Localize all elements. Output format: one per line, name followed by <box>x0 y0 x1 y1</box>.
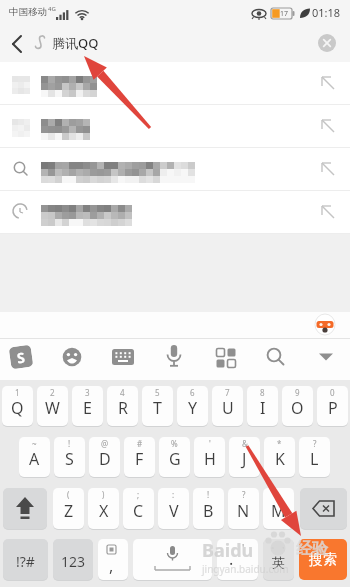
staticText: ! <box>68 438 71 449</box>
button[interactable]: ! <box>193 488 224 529</box>
button[interactable]: 9 <box>282 386 313 426</box>
staticText: I <box>260 397 266 419</box>
button[interactable]: ? <box>228 488 259 529</box>
staticText: … <box>275 489 282 500</box>
staticText: 6 <box>190 387 195 398</box>
button[interactable]: , <box>98 539 128 580</box>
button[interactable]: ' <box>194 437 225 477</box>
button[interactable]: 5 <box>142 386 173 426</box>
staticText: !?# <box>16 552 35 571</box>
staticText: 4 <box>120 387 125 398</box>
staticText: % <box>171 438 178 449</box>
staticText: & <box>242 438 248 449</box>
staticText: : <box>172 489 175 500</box>
staticText: K <box>275 448 285 470</box>
button[interactable] <box>216 348 236 368</box>
staticText: N <box>237 500 250 522</box>
staticText: H <box>204 448 216 470</box>
button[interactable]: 1 <box>2 386 33 426</box>
staticText: T <box>153 397 162 419</box>
button[interactable]: 8 <box>247 386 278 426</box>
button[interactable]: 6 <box>177 386 208 426</box>
staticText: 5 <box>155 387 160 398</box>
button[interactable] <box>318 34 336 52</box>
button[interactable]: 0 <box>317 386 348 426</box>
staticText: W <box>45 397 60 419</box>
staticText: ; <box>137 489 140 500</box>
staticText: C <box>133 500 144 522</box>
button[interactable] <box>0 191 350 234</box>
staticText: 3 <box>85 387 90 398</box>
button[interactable] <box>166 345 182 369</box>
button[interactable] <box>0 148 350 191</box>
button[interactable]: ) <box>88 488 119 529</box>
staticText: A <box>29 448 40 470</box>
button[interactable]: & <box>229 437 260 477</box>
staticText: Y <box>188 397 198 419</box>
button[interactable]: ~ <box>19 437 50 477</box>
staticText: J <box>242 448 247 470</box>
button[interactable]: … <box>263 488 294 529</box>
button[interactable]: 4 <box>107 386 138 426</box>
button[interactable] <box>112 349 135 366</box>
button[interactable]: S <box>9 345 33 369</box>
staticText: 经验 <box>296 539 328 559</box>
button[interactable] <box>6 33 30 55</box>
staticText: 9 <box>295 387 300 398</box>
button[interactable] <box>3 488 47 529</box>
button[interactable]: !?# <box>3 539 48 580</box>
staticText: Q <box>11 397 24 419</box>
staticText: 01:18 <box>312 5 341 20</box>
button[interactable]: · <box>217 539 258 580</box>
button[interactable]: % <box>159 437 190 477</box>
staticText: ) <box>102 489 105 500</box>
button[interactable] <box>133 539 212 580</box>
staticText: Baidu <box>202 538 254 562</box>
staticText: ! <box>207 489 210 500</box>
staticText: 4G <box>48 5 56 13</box>
staticText: B <box>203 500 214 522</box>
staticText: L <box>310 448 319 470</box>
button[interactable]: 123 <box>53 539 93 580</box>
staticText: O <box>291 397 304 419</box>
button[interactable]: # <box>124 437 155 477</box>
button[interactable]: ( <box>53 488 84 529</box>
staticText: G <box>169 448 181 470</box>
button[interactable]: ? <box>299 437 330 477</box>
staticText: F <box>135 448 144 470</box>
staticText: ( <box>67 489 70 500</box>
button[interactable] <box>0 62 350 105</box>
staticText: 7 <box>225 387 230 398</box>
staticText: , <box>109 555 114 577</box>
staticText: ' <box>242 541 245 555</box>
staticText: # <box>137 438 143 449</box>
staticText: @ <box>101 438 109 449</box>
staticText: 0 <box>330 387 335 398</box>
button[interactable]: 腾讯QQ <box>52 34 172 54</box>
staticText: X <box>99 500 109 522</box>
button[interactable] <box>318 352 334 362</box>
button[interactable] <box>266 347 286 367</box>
staticText: M <box>271 500 286 522</box>
button[interactable] <box>0 105 350 148</box>
button[interactable]: 2 <box>37 386 68 426</box>
staticText: 。， <box>271 540 287 550</box>
button[interactable]: @ <box>89 437 120 477</box>
staticText: 8 <box>260 387 265 398</box>
staticText: E <box>83 397 92 419</box>
button[interactable]: : <box>158 488 189 529</box>
button[interactable]: * <box>264 437 295 477</box>
button[interactable] <box>300 488 347 529</box>
button[interactable]: 3 <box>72 386 103 426</box>
staticText: ? <box>242 489 246 500</box>
button[interactable]: 搜索 <box>299 539 347 580</box>
button[interactable]: 7 <box>212 386 243 426</box>
staticText: U <box>222 397 234 419</box>
staticText: V <box>169 500 179 522</box>
button[interactable]: ; <box>123 488 154 529</box>
staticText: S <box>65 448 74 470</box>
button[interactable] <box>62 347 82 367</box>
button[interactable]: 。， <box>263 539 294 580</box>
staticText: jingyan.baidu.com <box>202 562 289 576</box>
button[interactable]: ! <box>54 437 85 477</box>
